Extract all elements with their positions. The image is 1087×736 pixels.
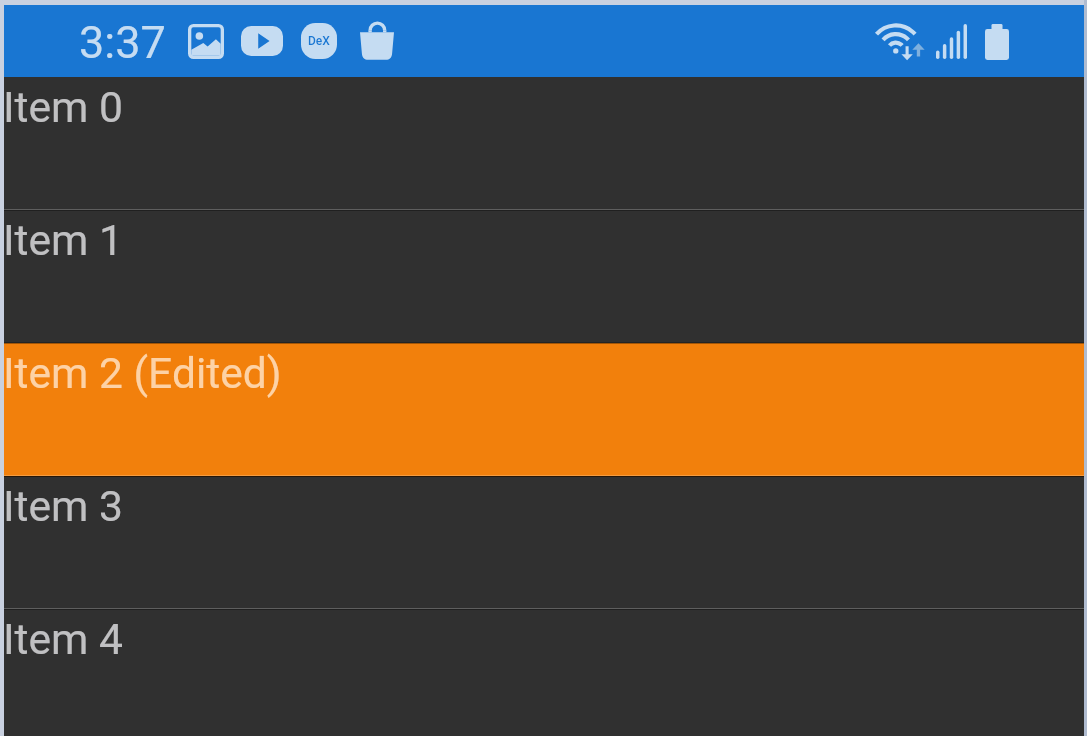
button[interactable]: Video: [241, 26, 283, 56]
button[interactable]: Item 0: [4, 77, 1084, 210]
staticText: Item 3: [3, 481, 123, 531]
button[interactable]: Battery: [985, 23, 1009, 60]
staticText: DeX: [308, 34, 330, 48]
button[interactable]: Item 2 (Edited): [4, 343, 1084, 476]
staticText: Item 4: [3, 614, 123, 664]
button[interactable]: Shopping: [360, 22, 394, 61]
staticText: 3:37: [79, 16, 166, 69]
button[interactable]: Wi-Fi: [875, 23, 922, 60]
button[interactable]: Item 1: [4, 210, 1084, 343]
staticText: Item 0: [3, 82, 123, 132]
button[interactable]: Item 3: [4, 476, 1084, 609]
button[interactable]: Signal strength: [935, 24, 967, 59]
button[interactable]: Gallery: [187, 23, 224, 59]
staticText: Item 1: [3, 215, 123, 265]
button[interactable]: DeX: [301, 23, 337, 59]
button[interactable]: Item 4: [4, 609, 1084, 736]
staticText: Item 2 (Edited): [3, 348, 282, 398]
